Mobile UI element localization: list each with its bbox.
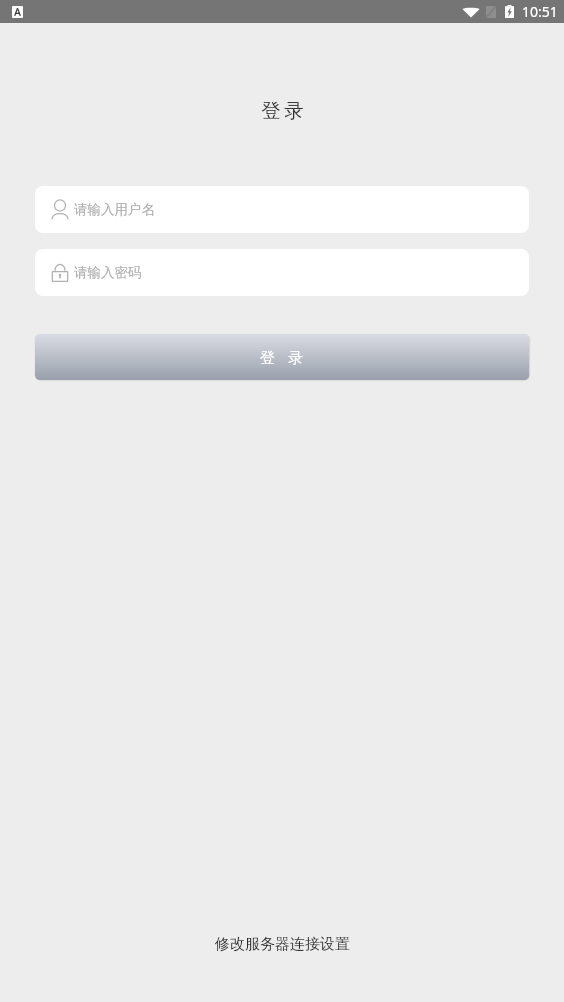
button[interactable]: 修改服务器连接设置 (0, 929, 564, 960)
other: Password (52, 263, 68, 282)
staticText: 登 录 (260, 347, 308, 367)
staticText: 10:51 (522, 2, 558, 21)
button[interactable]: User (35, 186, 529, 233)
staticText: 请输入密码 (74, 264, 142, 281)
staticText: 登 录 (0, 96, 564, 123)
other: User (52, 200, 68, 219)
staticText: 请输入用户名 (74, 201, 155, 218)
button[interactable]: 登 录 (35, 334, 529, 380)
button[interactable]: Password (35, 249, 529, 296)
staticText: 修改服务器连接设置 (215, 935, 350, 954)
